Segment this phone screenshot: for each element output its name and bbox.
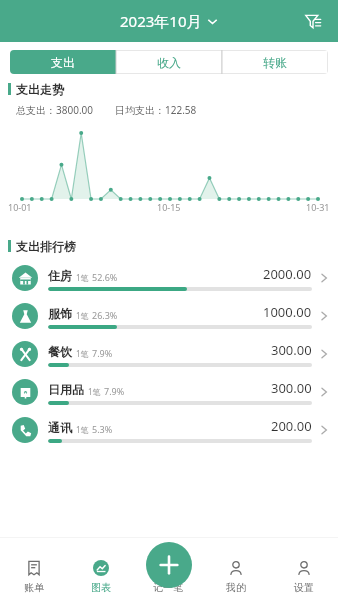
- button[interactable]: 设置: [270, 538, 338, 600]
- staticText: 设置: [294, 581, 314, 594]
- button[interactable]: 账单: [0, 538, 67, 600]
- button[interactable]: 住房: [0, 259, 338, 297]
- button[interactable]: 餐饮: [0, 335, 338, 373]
- staticText: 2023年10月: [120, 11, 202, 31]
- button[interactable]: Filter: [298, 6, 328, 36]
- staticText: 1000.00: [263, 303, 312, 321]
- staticText: 10-15: [157, 201, 181, 213]
- button[interactable]: 通讯: [0, 411, 338, 449]
- staticText: 住房: [48, 268, 72, 283]
- staticText: 收入: [157, 55, 181, 70]
- staticText: 支出: [51, 55, 75, 70]
- staticText: 1笔: [76, 348, 89, 359]
- staticText: 支出走势: [16, 82, 64, 97]
- staticText: 总支出：3800.00: [16, 103, 93, 117]
- staticText: 10-01: [8, 201, 32, 213]
- button[interactable]: 记一笔: [134, 538, 202, 600]
- staticText: 200.00: [271, 417, 312, 435]
- staticText: 2000.00: [263, 265, 312, 283]
- button[interactable]: 图表: [67, 538, 134, 600]
- staticText: 10-31: [306, 201, 330, 213]
- staticText: 服饰: [48, 306, 72, 321]
- staticText: 7.9%: [92, 347, 113, 359]
- staticText: 52.6%: [92, 271, 118, 283]
- button[interactable]: 日用品: [0, 373, 338, 411]
- staticText: 图表: [91, 581, 111, 594]
- staticText: 我的: [226, 581, 246, 594]
- staticText: 支出排行榜: [16, 239, 76, 254]
- button[interactable]: Add record: [146, 542, 192, 588]
- staticText: 1笔: [76, 424, 89, 435]
- staticText: 餐饮: [48, 344, 72, 359]
- staticText: 5.3%: [92, 423, 113, 435]
- staticText: 7.9%: [104, 385, 125, 397]
- button[interactable]: 支出: [10, 50, 116, 74]
- button[interactable]: 我的: [202, 538, 270, 600]
- staticText: 300.00: [271, 341, 312, 359]
- button[interactable]: 收入: [116, 50, 222, 74]
- staticText: 1笔: [88, 386, 101, 397]
- staticText: 1笔: [76, 310, 89, 321]
- staticText: 26.3%: [92, 309, 118, 321]
- button[interactable]: 转账: [222, 50, 328, 74]
- staticText: 1笔: [76, 272, 89, 283]
- staticText: 转账: [263, 55, 287, 70]
- staticText: 通讯: [48, 420, 72, 435]
- staticText: 账单: [24, 581, 44, 594]
- staticText: 日用品: [48, 382, 84, 397]
- staticText: 记一笔: [153, 581, 183, 594]
- button[interactable]: 2023年10月: [114, 9, 224, 33]
- button[interactable]: 服饰: [0, 297, 338, 335]
- staticText: 日均支出：122.58: [115, 103, 197, 117]
- staticText: 300.00: [271, 379, 312, 397]
